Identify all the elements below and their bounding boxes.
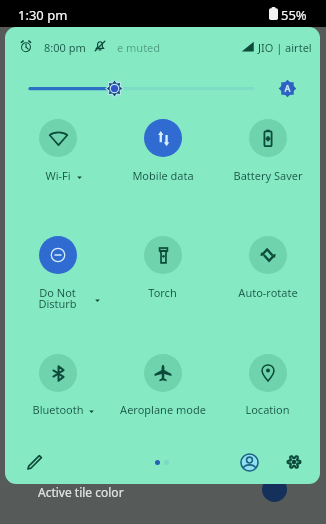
staticText: Mobile data <box>132 168 194 183</box>
staticText: Location <box>245 402 290 417</box>
button[interactable]: Auto brightness <box>279 80 296 97</box>
button[interactable]: Edit tiles <box>20 447 50 477</box>
staticText: Auto-rotate <box>238 285 298 300</box>
staticText: Battery Saver <box>233 168 303 183</box>
button[interactable]: Settings <box>279 447 309 477</box>
staticText: 8:00 pm <box>44 40 86 55</box>
staticText: Do Not Disturb <box>38 285 77 311</box>
button[interactable] <box>215 227 320 297</box>
button[interactable] <box>215 345 320 415</box>
staticText: Bluetooth <box>32 402 84 417</box>
button[interactable] <box>5 110 110 180</box>
staticText: 1:30 pm <box>18 6 68 24</box>
staticText: Active tile color <box>38 484 124 500</box>
button[interactable] <box>5 227 110 297</box>
button[interactable]: User <box>234 447 264 477</box>
staticText: e muted <box>117 40 161 55</box>
staticText: Aeroplane mode <box>120 402 206 417</box>
button[interactable] <box>5 345 110 415</box>
button[interactable] <box>110 345 215 415</box>
staticText: 55% <box>281 6 307 24</box>
button[interactable] <box>215 110 320 180</box>
staticText: Torch <box>148 285 177 300</box>
button[interactable] <box>110 110 215 180</box>
staticText: Wi-Fi <box>45 168 71 183</box>
staticText: JIO | airtel <box>258 40 312 55</box>
button[interactable] <box>110 227 215 297</box>
